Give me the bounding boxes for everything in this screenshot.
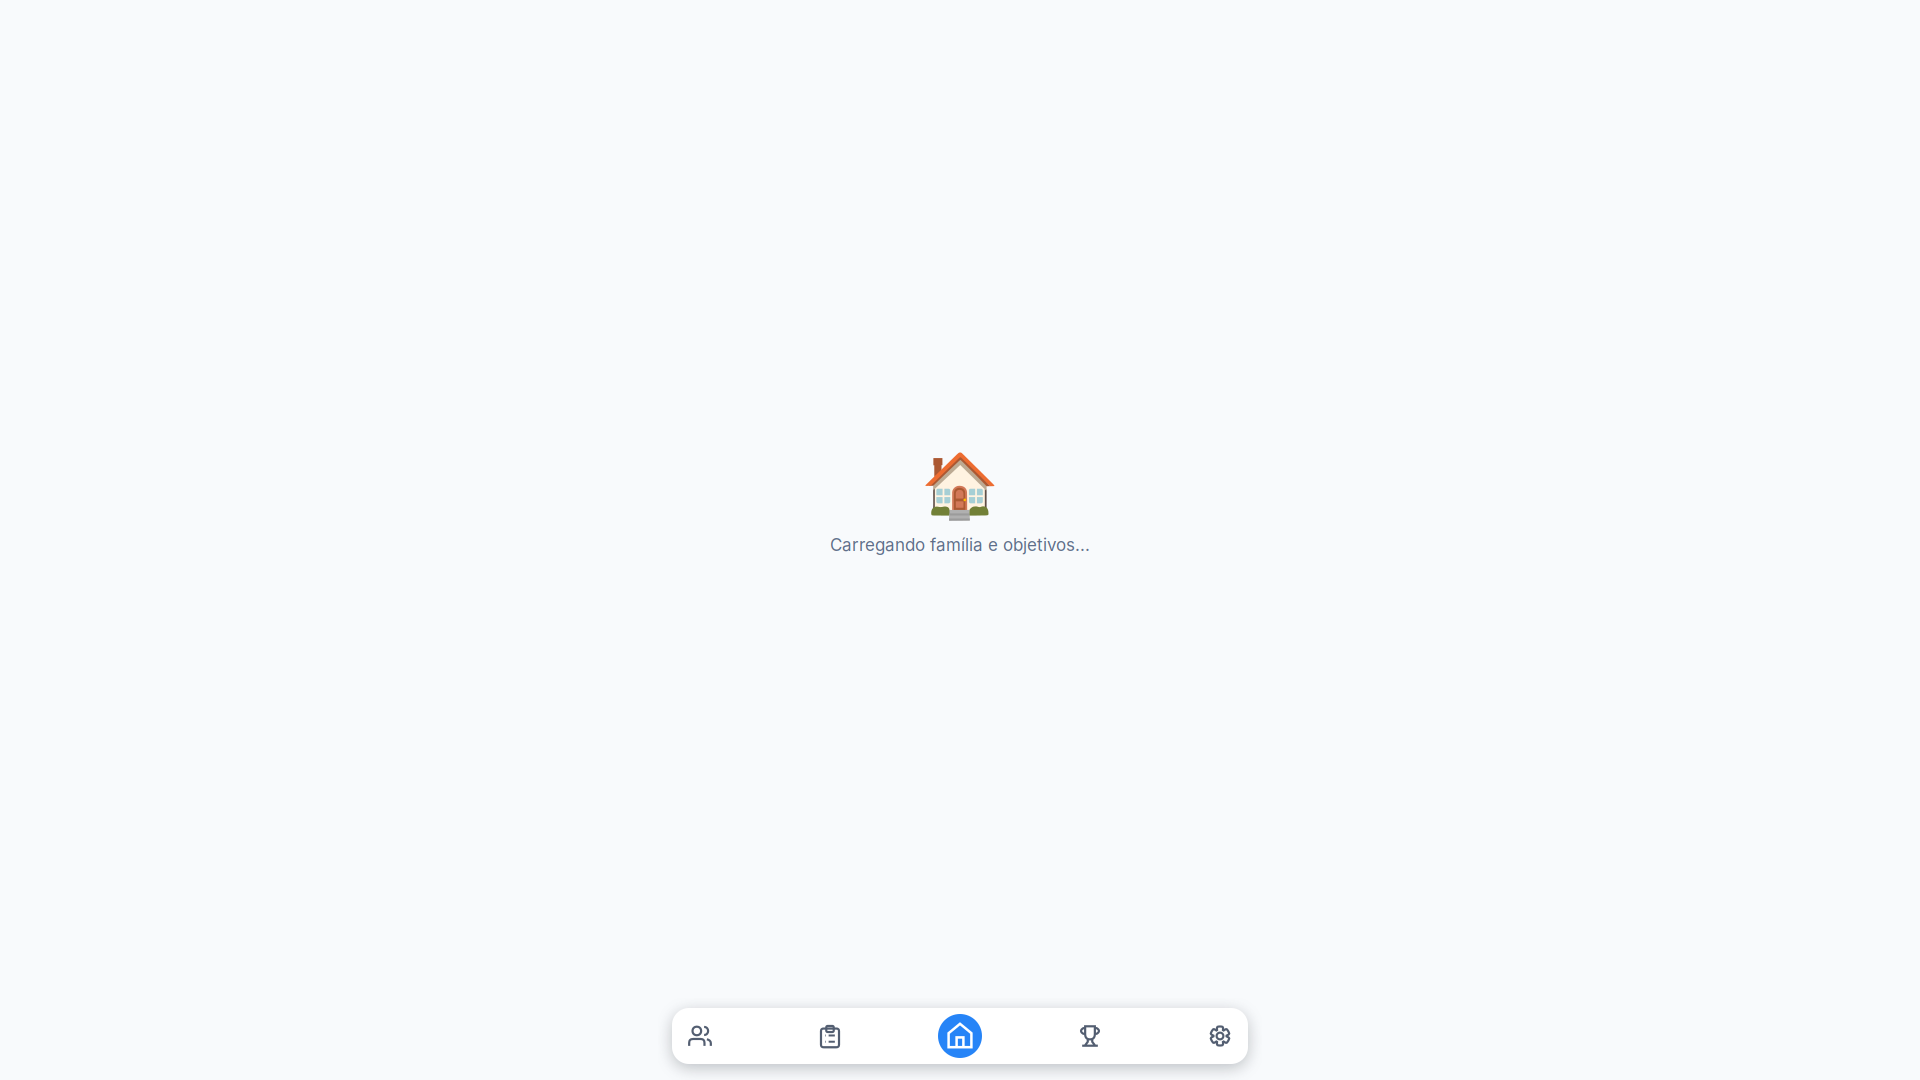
button[interactable]: Tarefas <box>787 1008 873 1064</box>
button[interactable]: Início <box>917 1008 1003 1064</box>
staticText: Carregando família e objetivos... <box>830 534 1090 555</box>
button[interactable]: Família <box>657 1008 743 1064</box>
button[interactable]: Conquistas <box>1047 1008 1133 1064</box>
staticText: 🏠 <box>921 449 999 522</box>
button[interactable]: Ajustes <box>1177 1008 1263 1064</box>
